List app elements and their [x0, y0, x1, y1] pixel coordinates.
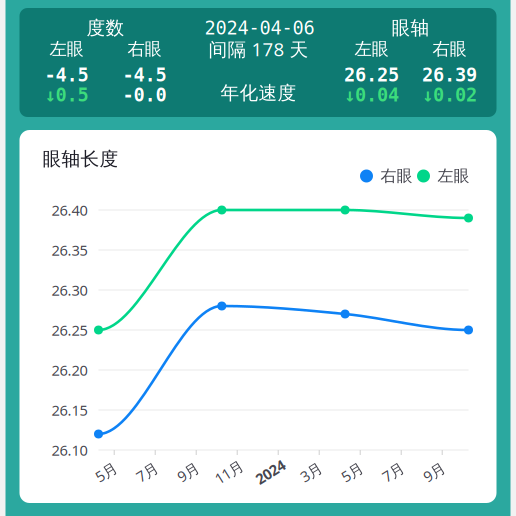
- staticText: 7月: [136, 462, 159, 482]
- staticText: 左眼: [49, 38, 83, 60]
- staticText: 2024-04-06: [204, 17, 314, 39]
- staticText: 右眼: [380, 166, 412, 186]
- staticText: 眼轴: [391, 16, 429, 39]
- staticText: 9月: [177, 462, 200, 482]
- staticText: 间隔 178 天: [208, 37, 308, 61]
- staticText: ↓0.04: [344, 84, 399, 106]
- staticText: ↓0.5: [44, 84, 88, 106]
- staticText: 左眼: [354, 38, 388, 60]
- staticText: 右眼: [127, 38, 161, 60]
- staticText: -4.5: [44, 64, 88, 86]
- staticText: 右眼: [432, 38, 466, 60]
- staticText: 左眼: [437, 166, 469, 186]
- staticText: 7月: [382, 462, 405, 482]
- staticText: 度数: [86, 16, 124, 39]
- staticText: 26.30: [51, 280, 87, 300]
- staticText: 眼轴长度: [42, 147, 118, 170]
- staticText: 26.25: [51, 320, 87, 340]
- staticText: 5月: [341, 462, 364, 482]
- staticText: 26.40: [51, 200, 87, 220]
- staticText: 11月: [214, 462, 245, 482]
- staticText: 2024: [254, 462, 286, 482]
- staticText: -0.0: [122, 84, 166, 106]
- staticText: 3月: [300, 462, 323, 482]
- staticText: 26.15: [51, 400, 87, 420]
- staticText: 26.25: [344, 64, 399, 86]
- staticText: 年化速度: [220, 81, 296, 104]
- staticText: -4.5: [122, 64, 166, 86]
- staticText: 26.20: [51, 360, 87, 380]
- staticText: ↓0.02: [422, 84, 477, 106]
- staticText: 9月: [423, 462, 446, 482]
- staticText: 26.35: [51, 240, 87, 260]
- staticText: 5月: [95, 462, 118, 482]
- staticText: 26.10: [51, 440, 87, 460]
- staticText: 26.39: [422, 64, 477, 86]
